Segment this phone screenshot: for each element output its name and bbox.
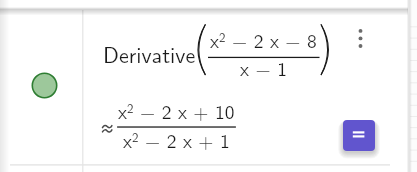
staticText: x2 − 2 x + 10	[118, 96, 235, 125]
button[interactable]: Evaluate expression	[343, 120, 375, 151]
button[interactable]: More options	[348, 22, 374, 48]
button[interactable]: Toggle visibility of object	[32, 73, 57, 98]
staticText: x − 1	[240, 53, 287, 82]
staticText: x2 − 2 x + 1	[123, 125, 230, 154]
staticText: x2 − 2 x − 8	[210, 25, 317, 54]
staticText: Derivative	[103, 38, 196, 70]
